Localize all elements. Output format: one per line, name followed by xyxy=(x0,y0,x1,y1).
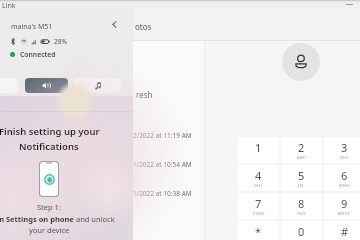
staticText: WXYZ xyxy=(338,211,351,216)
staticText: 9 xyxy=(341,196,348,211)
staticText: 0 xyxy=(298,224,305,239)
staticText: Link xyxy=(2,1,16,10)
staticText: 1/2022 at 10:38 AM xyxy=(133,189,192,198)
button[interactable]: 3 xyxy=(324,137,360,163)
button[interactable]: 6 xyxy=(324,165,360,191)
button[interactable]: Contact xyxy=(282,43,320,81)
staticText: and unlock xyxy=(74,214,115,224)
staticText: 8 xyxy=(298,196,305,211)
staticText: resh xyxy=(136,89,153,100)
button[interactable]: 0 xyxy=(281,221,322,240)
button[interactable]: 4 xyxy=(238,165,279,191)
staticText: 1/2022 at 10:54 AM xyxy=(133,160,192,169)
button[interactable]: Minimize xyxy=(341,0,357,9)
staticText: 4 xyxy=(255,168,262,183)
staticText: # xyxy=(341,224,349,239)
staticText: GHI xyxy=(254,183,263,188)
staticText: 5 xyxy=(298,168,305,183)
staticText: 1 xyxy=(255,140,262,155)
staticText: 2/2022 at 11:19 AM xyxy=(133,131,192,140)
button[interactable]: * xyxy=(238,221,279,240)
staticText: JKL xyxy=(298,183,305,188)
button[interactable]: 5 xyxy=(281,165,322,191)
button[interactable]: 8 xyxy=(281,193,322,219)
staticText: Finish setting up your xyxy=(0,125,100,138)
staticText: otos xyxy=(135,21,152,32)
staticText: TUV xyxy=(297,211,306,216)
button[interactable]: otos xyxy=(135,21,152,32)
staticText: 2 xyxy=(298,140,305,155)
button[interactable]: 2 xyxy=(281,137,322,163)
staticText: maina's M51 xyxy=(11,22,53,32)
button[interactable]: # xyxy=(324,221,360,240)
staticText: Step 1: xyxy=(37,202,61,212)
button[interactable]: Music xyxy=(74,78,121,93)
button[interactable]: 1 xyxy=(238,137,279,163)
staticText: 28% xyxy=(54,37,67,46)
staticText: MNO xyxy=(339,183,350,188)
staticText: DEF xyxy=(340,155,349,160)
staticText: Connected xyxy=(20,50,56,59)
staticText: * xyxy=(255,224,262,239)
staticText: 3 xyxy=(341,140,348,155)
staticText: Open Settings on phone xyxy=(0,214,74,224)
staticText: Notifications xyxy=(19,140,79,153)
staticText: PQRS xyxy=(253,211,265,216)
button[interactable]: Back xyxy=(106,16,122,32)
button[interactable]: 9 xyxy=(324,193,360,219)
staticText: 6 xyxy=(341,168,348,183)
staticText: ABC xyxy=(297,155,306,160)
staticText: 7 xyxy=(255,196,262,211)
button[interactable]: 7 xyxy=(238,193,279,219)
button[interactable]: Volume xyxy=(25,78,68,93)
staticText: your device xyxy=(29,225,70,235)
